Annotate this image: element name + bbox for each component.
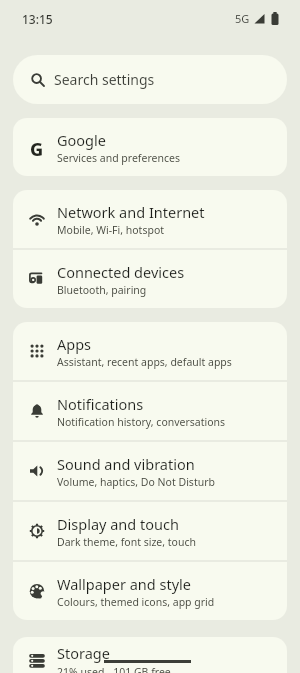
staticText: Bluetooth, pairing <box>57 283 147 297</box>
button[interactable]: Storage <box>13 637 287 673</box>
staticText: Connected devices <box>57 262 185 282</box>
staticText: Volume, haptics, Do Not Disturb <box>57 475 215 489</box>
staticText: 5G <box>235 11 250 26</box>
staticText: Google <box>57 130 106 150</box>
staticText: 21% used - 101 GB free <box>57 665 171 673</box>
button[interactable]: G <box>13 118 287 176</box>
staticText: Search settings <box>54 70 155 89</box>
button[interactable]: Search settings <box>13 55 287 104</box>
button[interactable]: Sound and vibration <box>13 442 287 500</box>
staticText: Wallpaper and style <box>57 574 191 594</box>
staticText: Assistant, recent apps, default apps <box>57 355 232 369</box>
button[interactable]: Notifications <box>13 382 287 440</box>
button[interactable]: Connected devices <box>13 250 287 308</box>
staticText: Network and Internet <box>57 202 205 222</box>
staticText: Dark theme, font size, touch <box>57 535 196 549</box>
staticText: Apps <box>57 334 92 354</box>
staticText: Storage <box>57 643 110 663</box>
staticText: Services and preferences <box>57 151 180 165</box>
button[interactable]: Network and Internet <box>13 190 287 248</box>
staticText: 13:15 <box>22 11 53 27</box>
staticText: Display and touch <box>57 514 179 534</box>
button[interactable]: Display and touch <box>13 502 287 560</box>
staticText: Colours, themed icons, app grid <box>57 595 215 609</box>
button[interactable]: Apps <box>13 322 287 380</box>
staticText: Sound and vibration <box>57 454 195 474</box>
staticText: Notification history, conversations <box>57 415 226 429</box>
staticText: G <box>30 137 44 157</box>
staticText: Mobile, Wi-Fi, hotspot <box>57 223 165 237</box>
button[interactable]: Wallpaper and style <box>13 562 287 620</box>
staticText: Notifications <box>57 394 144 414</box>
